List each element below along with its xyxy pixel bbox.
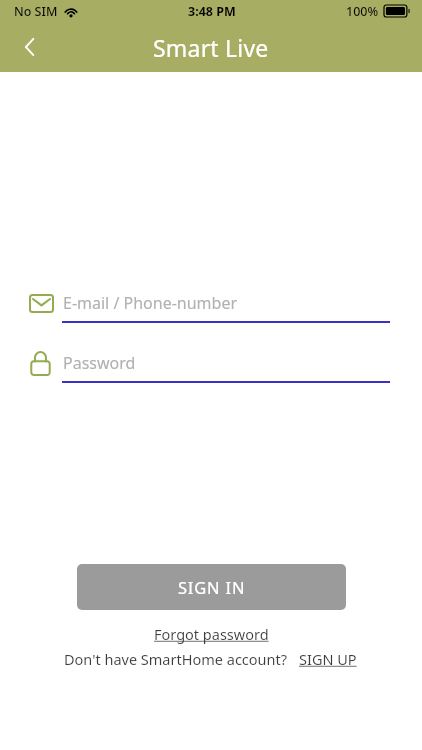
button[interactable]: SIGN UP — [297, 648, 359, 670]
staticText: Smart Live — [153, 32, 269, 63]
button[interactable]: Password — [0, 349, 422, 383]
button[interactable]: SIGN IN — [77, 564, 346, 610]
staticText: SIGN IN — [178, 576, 246, 598]
staticText: 3:48 PM — [188, 3, 236, 20]
staticText: 100% — [346, 3, 379, 20]
button[interactable]: E-mail / Phone-number — [0, 289, 422, 323]
staticText: No SIM — [14, 3, 58, 20]
staticText: E-mail / Phone-number — [63, 292, 238, 314]
button[interactable]: Forgot password — [150, 623, 273, 645]
staticText: Password — [63, 352, 136, 374]
staticText: SIGN UP — [299, 649, 357, 669]
staticText: Forgot password — [154, 624, 269, 644]
staticText: Don't have SmartHome account? — [64, 649, 288, 669]
button[interactable]: Back — [8, 25, 52, 69]
